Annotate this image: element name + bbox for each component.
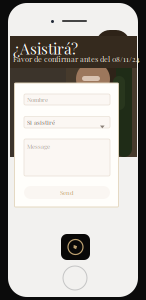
staticText: Send [60,188,74,197]
staticText: Nombre [27,95,48,104]
staticText: Si asistiré [27,118,55,126]
button[interactable]: WhatsApp [61,234,90,260]
button[interactable]: Si asistiré [24,116,110,128]
staticText: Message [27,142,50,150]
staticText: ¿Asistirá? [13,38,78,58]
button[interactable]: Send [24,186,110,199]
staticText: Favor de confirmar antes del 08/11/24 [13,54,140,64]
